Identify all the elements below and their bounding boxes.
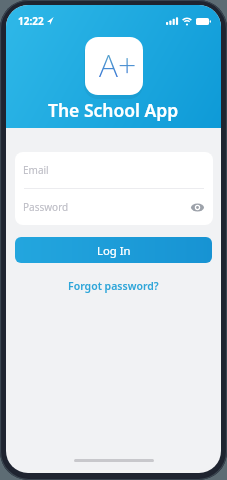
- button[interactable]: Email: [15, 152, 213, 188]
- button[interactable]: Password: [15, 189, 213, 225]
- staticText: Log In: [97, 243, 131, 258]
- staticText: Password: [23, 200, 69, 214]
- staticText: 12:22: [18, 14, 44, 28]
- staticText: A+: [99, 43, 137, 87]
- button[interactable]: Forgot password?: [68, 279, 159, 293]
- staticText: The School App: [48, 98, 179, 122]
- staticText: Email: [23, 163, 49, 177]
- button[interactable]: Log In: [15, 237, 212, 263]
